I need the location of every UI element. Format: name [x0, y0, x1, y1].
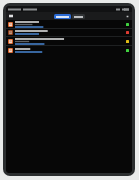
button[interactable] — [6, 46, 132, 54]
button[interactable] — [72, 14, 85, 19]
button[interactable] — [6, 29, 132, 36]
button[interactable] — [6, 37, 132, 45]
button[interactable]: More options — [124, 13, 130, 19]
button[interactable] — [54, 14, 71, 19]
button[interactable]: Menu — [8, 13, 14, 19]
button[interactable] — [6, 20, 132, 28]
